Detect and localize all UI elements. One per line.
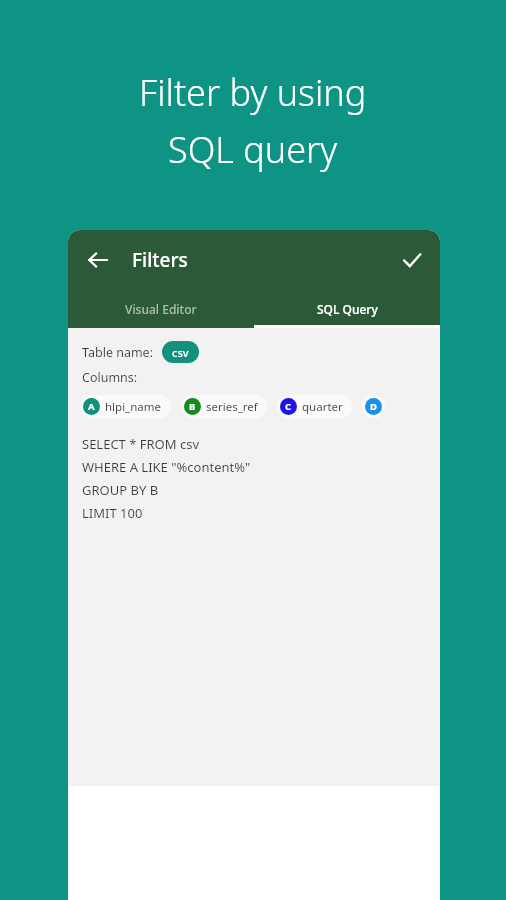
staticText: hlpi_name (105, 399, 162, 415)
button[interactable]: A (80, 395, 171, 418)
staticText: SQL Query (317, 301, 378, 317)
staticText: Visual Editor (125, 301, 197, 317)
staticText: Filter by using (139, 68, 367, 117)
staticText: LIMIT 100 (82, 504, 143, 522)
staticText: Table name: (82, 344, 154, 361)
staticText: Filters (132, 247, 188, 273)
staticText: SQL query (168, 125, 338, 174)
button[interactable]: D (362, 395, 385, 418)
staticText: A (88, 400, 95, 413)
button[interactable]: Visual Editor (68, 290, 254, 328)
staticText: quarter (302, 399, 343, 415)
staticText: Columns: (82, 369, 138, 386)
button[interactable]: C (277, 395, 352, 418)
staticText: series_ref (206, 399, 258, 415)
button[interactable]: SQL Query (254, 290, 440, 328)
button[interactable]: B (181, 395, 267, 418)
staticText: B (189, 400, 196, 413)
staticText: D (370, 400, 377, 413)
button[interactable]: Back (78, 240, 118, 280)
staticText: WHERE A LIKE "%content%" (82, 458, 251, 476)
button[interactable]: csv (162, 341, 199, 363)
staticText: GROUP BY B (82, 481, 159, 499)
staticText: csv (172, 345, 189, 360)
staticText: C (285, 400, 292, 413)
button[interactable]: Apply filters (392, 240, 432, 280)
staticText: SELECT * FROM csv (82, 435, 200, 453)
